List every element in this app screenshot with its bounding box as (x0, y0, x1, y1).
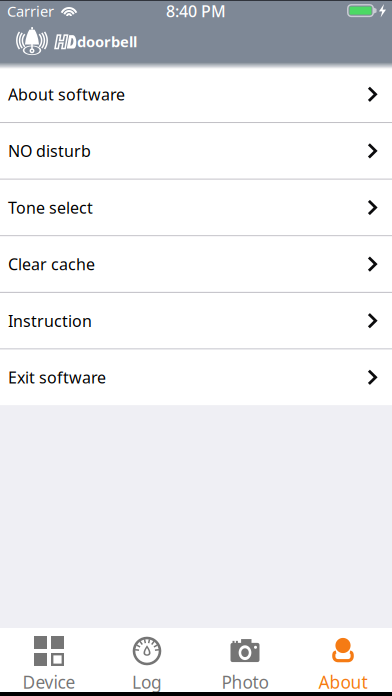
button[interactable]: Log (98, 628, 196, 692)
staticText: Tone select (8, 197, 93, 218)
button[interactable]: Instruction (0, 293, 392, 348)
button[interactable]: NO disturb (0, 123, 392, 179)
button[interactable]: About software (0, 66, 392, 122)
button[interactable]: Device (0, 628, 98, 692)
button[interactable]: About (294, 628, 392, 692)
button[interactable]: Photo (196, 628, 294, 692)
staticText: Exit software (8, 367, 106, 388)
staticText: About (318, 670, 367, 693)
staticText: Instruction (8, 310, 92, 331)
staticText: Device (22, 670, 75, 693)
staticText: Photo (221, 670, 268, 693)
button[interactable]: Clear cache (0, 236, 392, 292)
staticText: Clear cache (8, 253, 95, 275)
staticText: doorbell (77, 32, 137, 51)
staticText: NO disturb (8, 140, 91, 161)
button[interactable]: Exit software (0, 349, 392, 405)
button[interactable]: Tone select (0, 180, 392, 235)
staticText: 8:40 PM (166, 0, 226, 22)
staticText: Carrier (7, 1, 54, 21)
staticText: Log (132, 670, 162, 693)
staticText: About software (8, 84, 125, 105)
